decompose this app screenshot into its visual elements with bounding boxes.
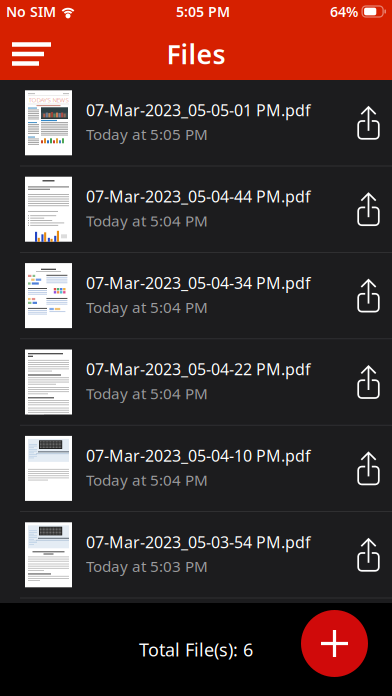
staticText: Today at 5:03 PM [86, 556, 208, 576]
staticText: Total File(s): 6 [139, 637, 253, 662]
button[interactable]: 07-Mar-2023_05-04-34 PM.pdf [0, 253, 392, 338]
button[interactable]: 07-Mar-2023_05-04-10 PM.pdf [0, 426, 392, 511]
staticText: Today at 5:05 PM [86, 124, 208, 144]
staticText: 07-Mar-2023_05-05-01 PM.pdf [86, 99, 311, 121]
staticText: 07-Mar-2023_05-04-22 PM.pdf [86, 358, 311, 380]
staticText: 64% [330, 2, 358, 21]
button[interactable]: Menu [0, 27, 63, 81]
staticText: 07-Mar-2023_05-03-54 PM.pdf [86, 531, 311, 553]
staticText: Files [166, 36, 225, 72]
button[interactable]: TODAY'S NEWS [0, 80, 392, 166]
staticText: Today at 5:04 PM [86, 210, 208, 231]
staticText: Today at 5:04 PM [86, 469, 208, 490]
staticText: 07-Mar-2023_05-04-10 PM.pdf [86, 445, 311, 466]
button[interactable]: Add file [301, 610, 368, 677]
button[interactable]: 07-Mar-2023_05-03-54 PM.pdf [0, 512, 392, 598]
button[interactable]: 07-Mar-2023_05-04-44 PM.pdf [0, 166, 392, 252]
staticText: Today at 5:04 PM [86, 383, 208, 404]
staticText: 5:05 PM [176, 2, 230, 21]
button[interactable]: 07-Mar-2023_05-04-22 PM.pdf [0, 339, 392, 425]
staticText: TODAY'S NEWS [28, 96, 68, 104]
staticText: No SIM [6, 2, 56, 21]
staticText: Today at 5:04 PM [86, 297, 208, 317]
staticText: 07-Mar-2023_05-04-34 PM.pdf [86, 272, 311, 294]
staticText: 07-Mar-2023_05-04-44 PM.pdf [86, 185, 311, 207]
